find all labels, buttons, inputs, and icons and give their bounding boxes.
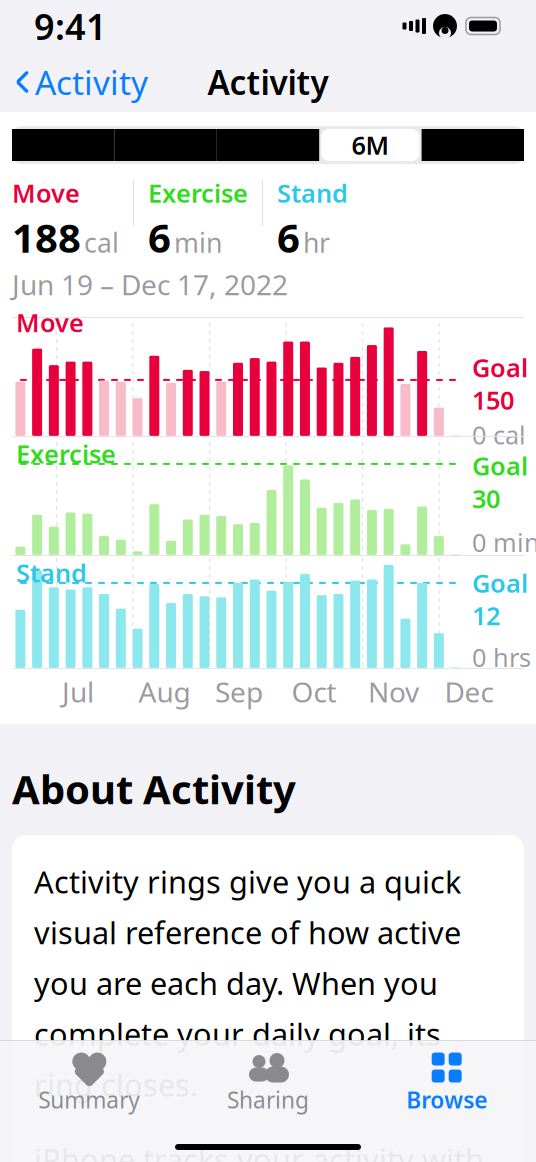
staticText: Activity — [207, 60, 328, 104]
staticText: D — [54, 128, 72, 162]
staticText: Goal — [472, 350, 528, 384]
staticText: About Activity — [12, 762, 296, 815]
staticText: 6M — [351, 128, 389, 162]
staticText: iPhone tracks your activity with a Move … — [34, 1139, 502, 1162]
button[interactable]: Y — [422, 126, 524, 164]
button[interactable]: M — [217, 126, 319, 164]
staticText: 188 — [12, 211, 81, 264]
staticText: Sharing — [227, 1084, 309, 1115]
staticText: M — [256, 128, 279, 162]
staticText: Dec — [444, 673, 493, 710]
staticText: 9:41 — [34, 2, 107, 50]
staticText: 0 min — [472, 525, 536, 559]
button[interactable]: Browse — [357, 1044, 536, 1115]
staticText: min — [174, 225, 222, 260]
staticText: 30 — [472, 482, 500, 515]
staticText: 0 cal — [472, 418, 526, 451]
staticText: Exercise — [16, 437, 116, 470]
staticText: Jul — [62, 673, 94, 710]
staticText: Nov — [368, 673, 419, 710]
staticText: 6 — [148, 211, 171, 264]
staticText: Oct — [291, 673, 336, 710]
staticText: Goal — [472, 449, 528, 482]
button[interactable]: Activity — [16, 54, 148, 110]
staticText: W — [154, 128, 178, 162]
staticText: Aug — [138, 673, 190, 710]
button[interactable]: 6M — [319, 126, 422, 164]
button[interactable]: D — [12, 126, 114, 164]
staticText: Activity — [35, 60, 148, 104]
staticText: Exercise — [148, 176, 248, 210]
staticText: Goal — [472, 566, 528, 600]
staticText: Stand — [277, 176, 348, 210]
staticText: cal — [84, 225, 119, 260]
staticText: Jun 19 – Dec 17, 2022 — [12, 266, 288, 303]
staticText: 150 — [472, 383, 514, 417]
staticText: 0 hrs — [472, 640, 531, 674]
staticText: hr — [303, 225, 330, 260]
button[interactable]: W — [114, 126, 217, 164]
button[interactable]: Sharing — [179, 1044, 357, 1115]
staticText: Stand — [16, 556, 87, 589]
staticText: 12 — [472, 599, 500, 632]
button[interactable]: Summary — [0, 1044, 179, 1115]
staticText: Summary — [38, 1084, 140, 1115]
staticText: Sep — [215, 673, 263, 710]
staticText: Activity rings give you a quick visual r… — [34, 861, 461, 1105]
staticText: 6 — [277, 211, 300, 264]
staticText: Move — [16, 305, 84, 339]
staticText: Move — [12, 176, 80, 210]
staticText: Y — [466, 128, 480, 162]
staticText: Browse — [406, 1084, 487, 1115]
